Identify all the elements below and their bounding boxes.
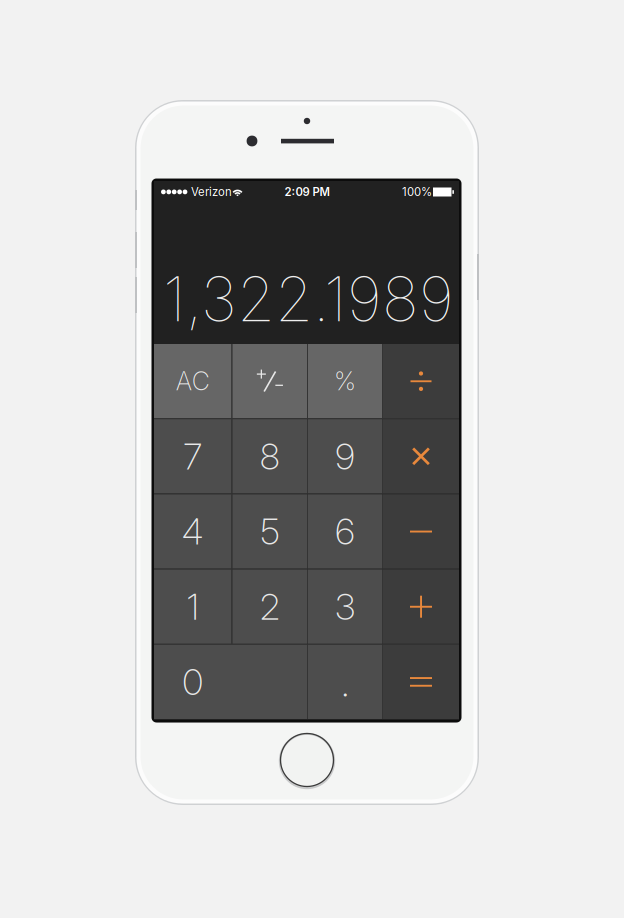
button[interactable]: 1 [154,570,231,644]
staticText: 1 [187,585,199,628]
staticText: 100% [402,185,432,199]
staticText: 2:09 PM [284,185,329,199]
staticText: % [334,366,356,396]
staticText: 5 [260,510,279,553]
button[interactable]: Divide [383,344,459,418]
button[interactable]: Multiply [383,419,459,493]
staticText: 6 [335,510,355,553]
button[interactable]: All clear [154,344,231,418]
staticText: 9 [335,434,355,478]
button[interactable]: 6 [308,494,382,569]
staticText: . [341,658,349,706]
staticText: 7 [183,434,202,478]
button[interactable]: Subtract [383,494,459,569]
staticText: 4 [182,510,204,553]
button[interactable]: 7 [154,419,231,493]
staticText: 2 [260,585,280,628]
staticText: 1,322.1989 [163,262,454,336]
button[interactable]: Plus minus [232,344,307,418]
button[interactable]: Percent [308,344,382,418]
button[interactable]: Decimal point [308,645,382,719]
button[interactable]: 8 [232,419,307,493]
staticText: Verizon [191,185,232,199]
button[interactable]: 2 [232,570,307,644]
button[interactable]: Equals [383,645,459,719]
button[interactable]: 9 [308,419,382,493]
staticText: 8 [260,434,280,478]
staticText: AC [176,366,210,396]
button[interactable]: 3 [308,570,382,644]
staticText: 3 [335,585,355,628]
button[interactable]: 5 [232,494,307,569]
button[interactable]: Zero [154,645,307,719]
staticText: 0 [182,660,203,704]
button[interactable]: 4 [154,494,231,569]
button[interactable]: Add [383,570,459,644]
